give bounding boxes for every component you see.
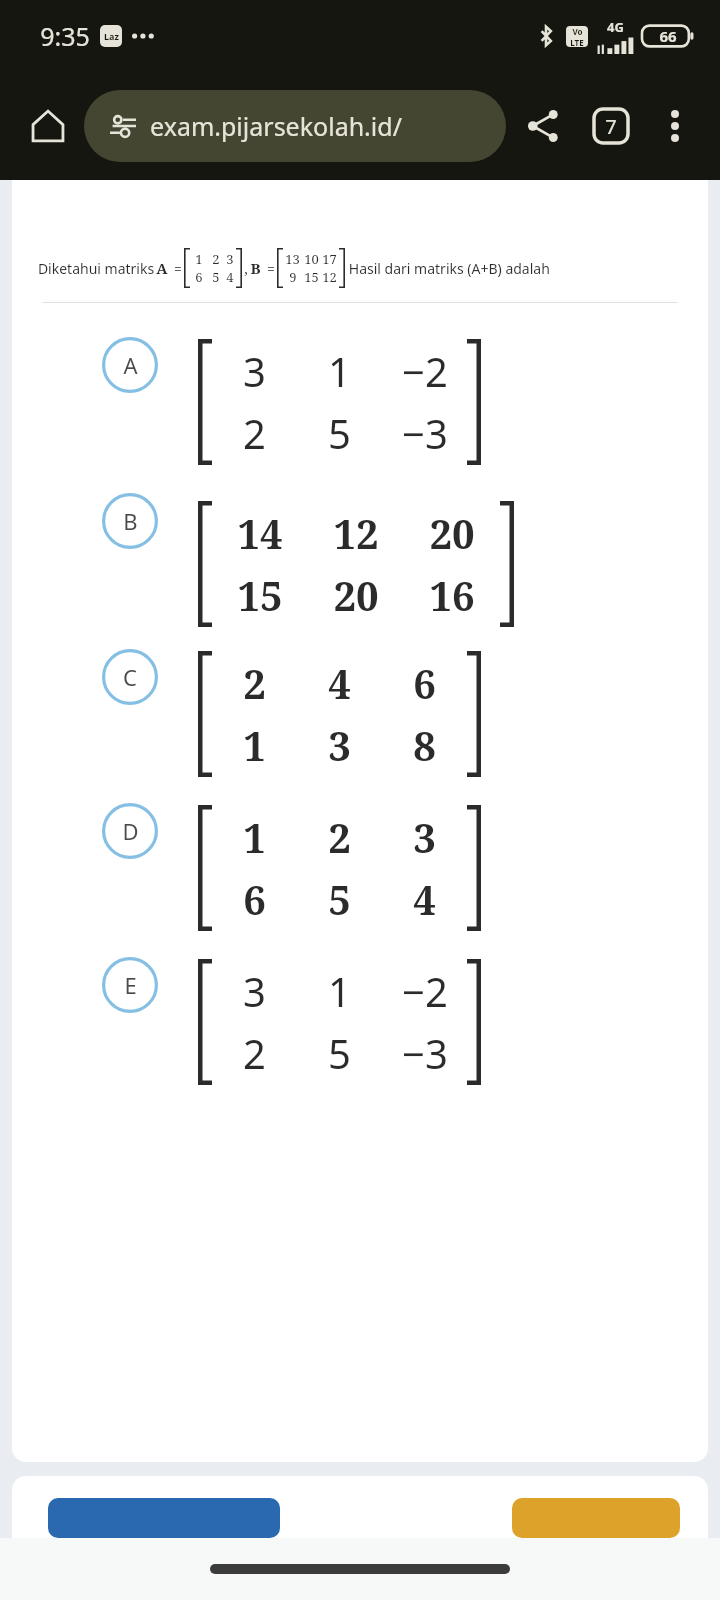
staticText: −2 (402, 344, 448, 398)
staticText: 5 (328, 872, 351, 926)
button[interactable]: A (12, 335, 708, 465)
staticText: −3 (402, 1026, 448, 1080)
staticText: 9 (289, 268, 297, 286)
staticText: 15 (237, 568, 283, 622)
button[interactable]: Home (20, 98, 76, 154)
staticText: 9:35 (40, 19, 90, 53)
staticText: 4 (328, 656, 351, 710)
button[interactable]: More options (650, 101, 700, 151)
staticText: 8 (413, 718, 436, 772)
staticText: 2 (243, 656, 266, 710)
staticText: A (156, 258, 168, 278)
staticText: Hasil dari matriks (A+B) adalah (345, 259, 550, 278)
staticText: LTE (570, 37, 584, 47)
button[interactable]: E (12, 955, 708, 1085)
staticText: 3 (226, 250, 234, 268)
staticText: 3 (243, 964, 266, 1018)
button[interactable]: D (12, 801, 708, 931)
button[interactable] (48, 1498, 280, 1538)
staticText: 5 (212, 268, 220, 286)
staticText: 14 (237, 506, 283, 560)
staticText: exam.pijarsekolah.id/ (150, 109, 402, 143)
staticText: 1 (328, 964, 351, 1018)
staticText: 1 (195, 250, 203, 268)
staticText: 6 (195, 268, 203, 286)
staticText: E (124, 970, 137, 1000)
staticText: C (123, 662, 137, 692)
staticText: 3 (328, 718, 351, 772)
staticText: = (168, 259, 184, 278)
staticText: D (122, 816, 139, 846)
button[interactable]: B (12, 491, 708, 627)
staticText: −2 (402, 964, 448, 1018)
staticText: 6 (243, 872, 266, 926)
staticText: 20 (333, 568, 379, 622)
staticText: 5 (328, 1026, 351, 1080)
staticText: 5 (328, 406, 351, 460)
staticText: 12 (333, 506, 379, 560)
staticText: 2 (243, 406, 266, 460)
staticText: 66 (659, 26, 677, 46)
staticText: Diketahui matriks (36, 259, 156, 278)
staticText: Laz (104, 30, 119, 42)
staticText: Vo (572, 26, 583, 37)
staticText: 15 (304, 268, 319, 286)
staticText: 4 (413, 872, 436, 926)
staticText: 10 (304, 250, 319, 268)
staticText: 16 (429, 568, 475, 622)
staticText: 1 (328, 344, 351, 398)
staticText: 4G (607, 18, 624, 36)
staticText: 6 (413, 656, 436, 710)
button[interactable] (512, 1498, 680, 1538)
staticText: 2 (212, 250, 220, 268)
staticText: 3 (243, 344, 266, 398)
button[interactable]: C (12, 647, 708, 777)
staticText: B (123, 506, 138, 536)
staticText: = (261, 259, 277, 278)
staticText: 2 (328, 810, 351, 864)
staticText: 1 (243, 810, 266, 864)
staticText: 17 (322, 250, 337, 268)
staticText: −3 (402, 406, 448, 460)
staticText: , (242, 259, 250, 278)
staticText: 1 (243, 718, 266, 772)
staticText: 7 (605, 113, 617, 140)
button[interactable]: Share (516, 99, 570, 153)
staticText: B (250, 258, 261, 278)
button[interactable]: exam.pijarsekolah.id/ (84, 90, 506, 162)
staticText: 2 (243, 1026, 266, 1080)
button[interactable]: Tabs (584, 99, 638, 153)
staticText: 20 (429, 506, 475, 560)
staticText: 12 (322, 268, 337, 286)
staticText: 13 (285, 250, 300, 268)
staticText: 4 (226, 268, 234, 286)
staticText: 3 (413, 810, 436, 864)
staticText: A (123, 350, 138, 380)
